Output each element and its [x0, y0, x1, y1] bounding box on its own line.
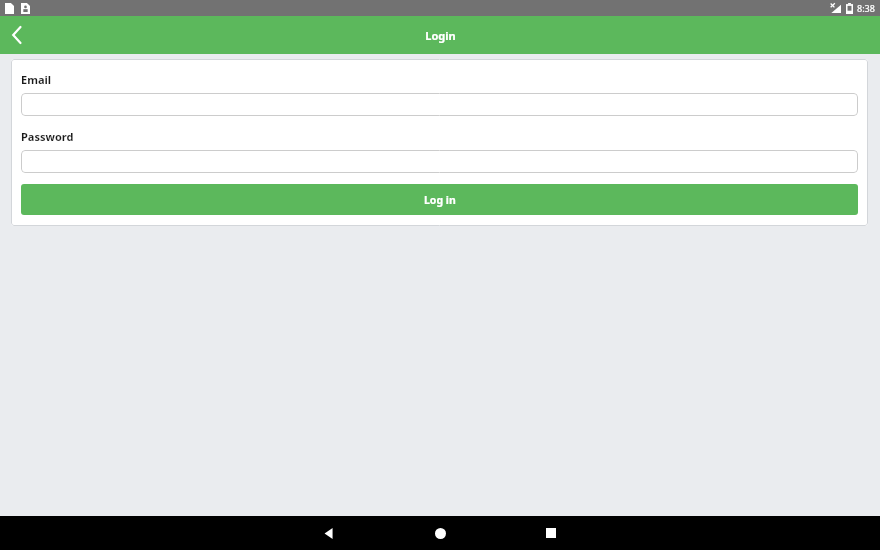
button[interactable]: Log in — [21, 184, 858, 215]
staticText: Login — [425, 28, 456, 43]
staticText: 8:38 — [857, 2, 875, 14]
button[interactable] — [21, 93, 858, 116]
button[interactable] — [21, 150, 858, 173]
button[interactable]: Recent apps — [529, 516, 573, 550]
button[interactable]: Home — [418, 516, 462, 550]
staticText: Email — [21, 72, 52, 87]
staticText: Password — [21, 129, 74, 144]
staticText: Log in — [424, 193, 456, 207]
button[interactable]: Back — [0, 16, 34, 54]
button[interactable]: Back — [307, 516, 351, 550]
